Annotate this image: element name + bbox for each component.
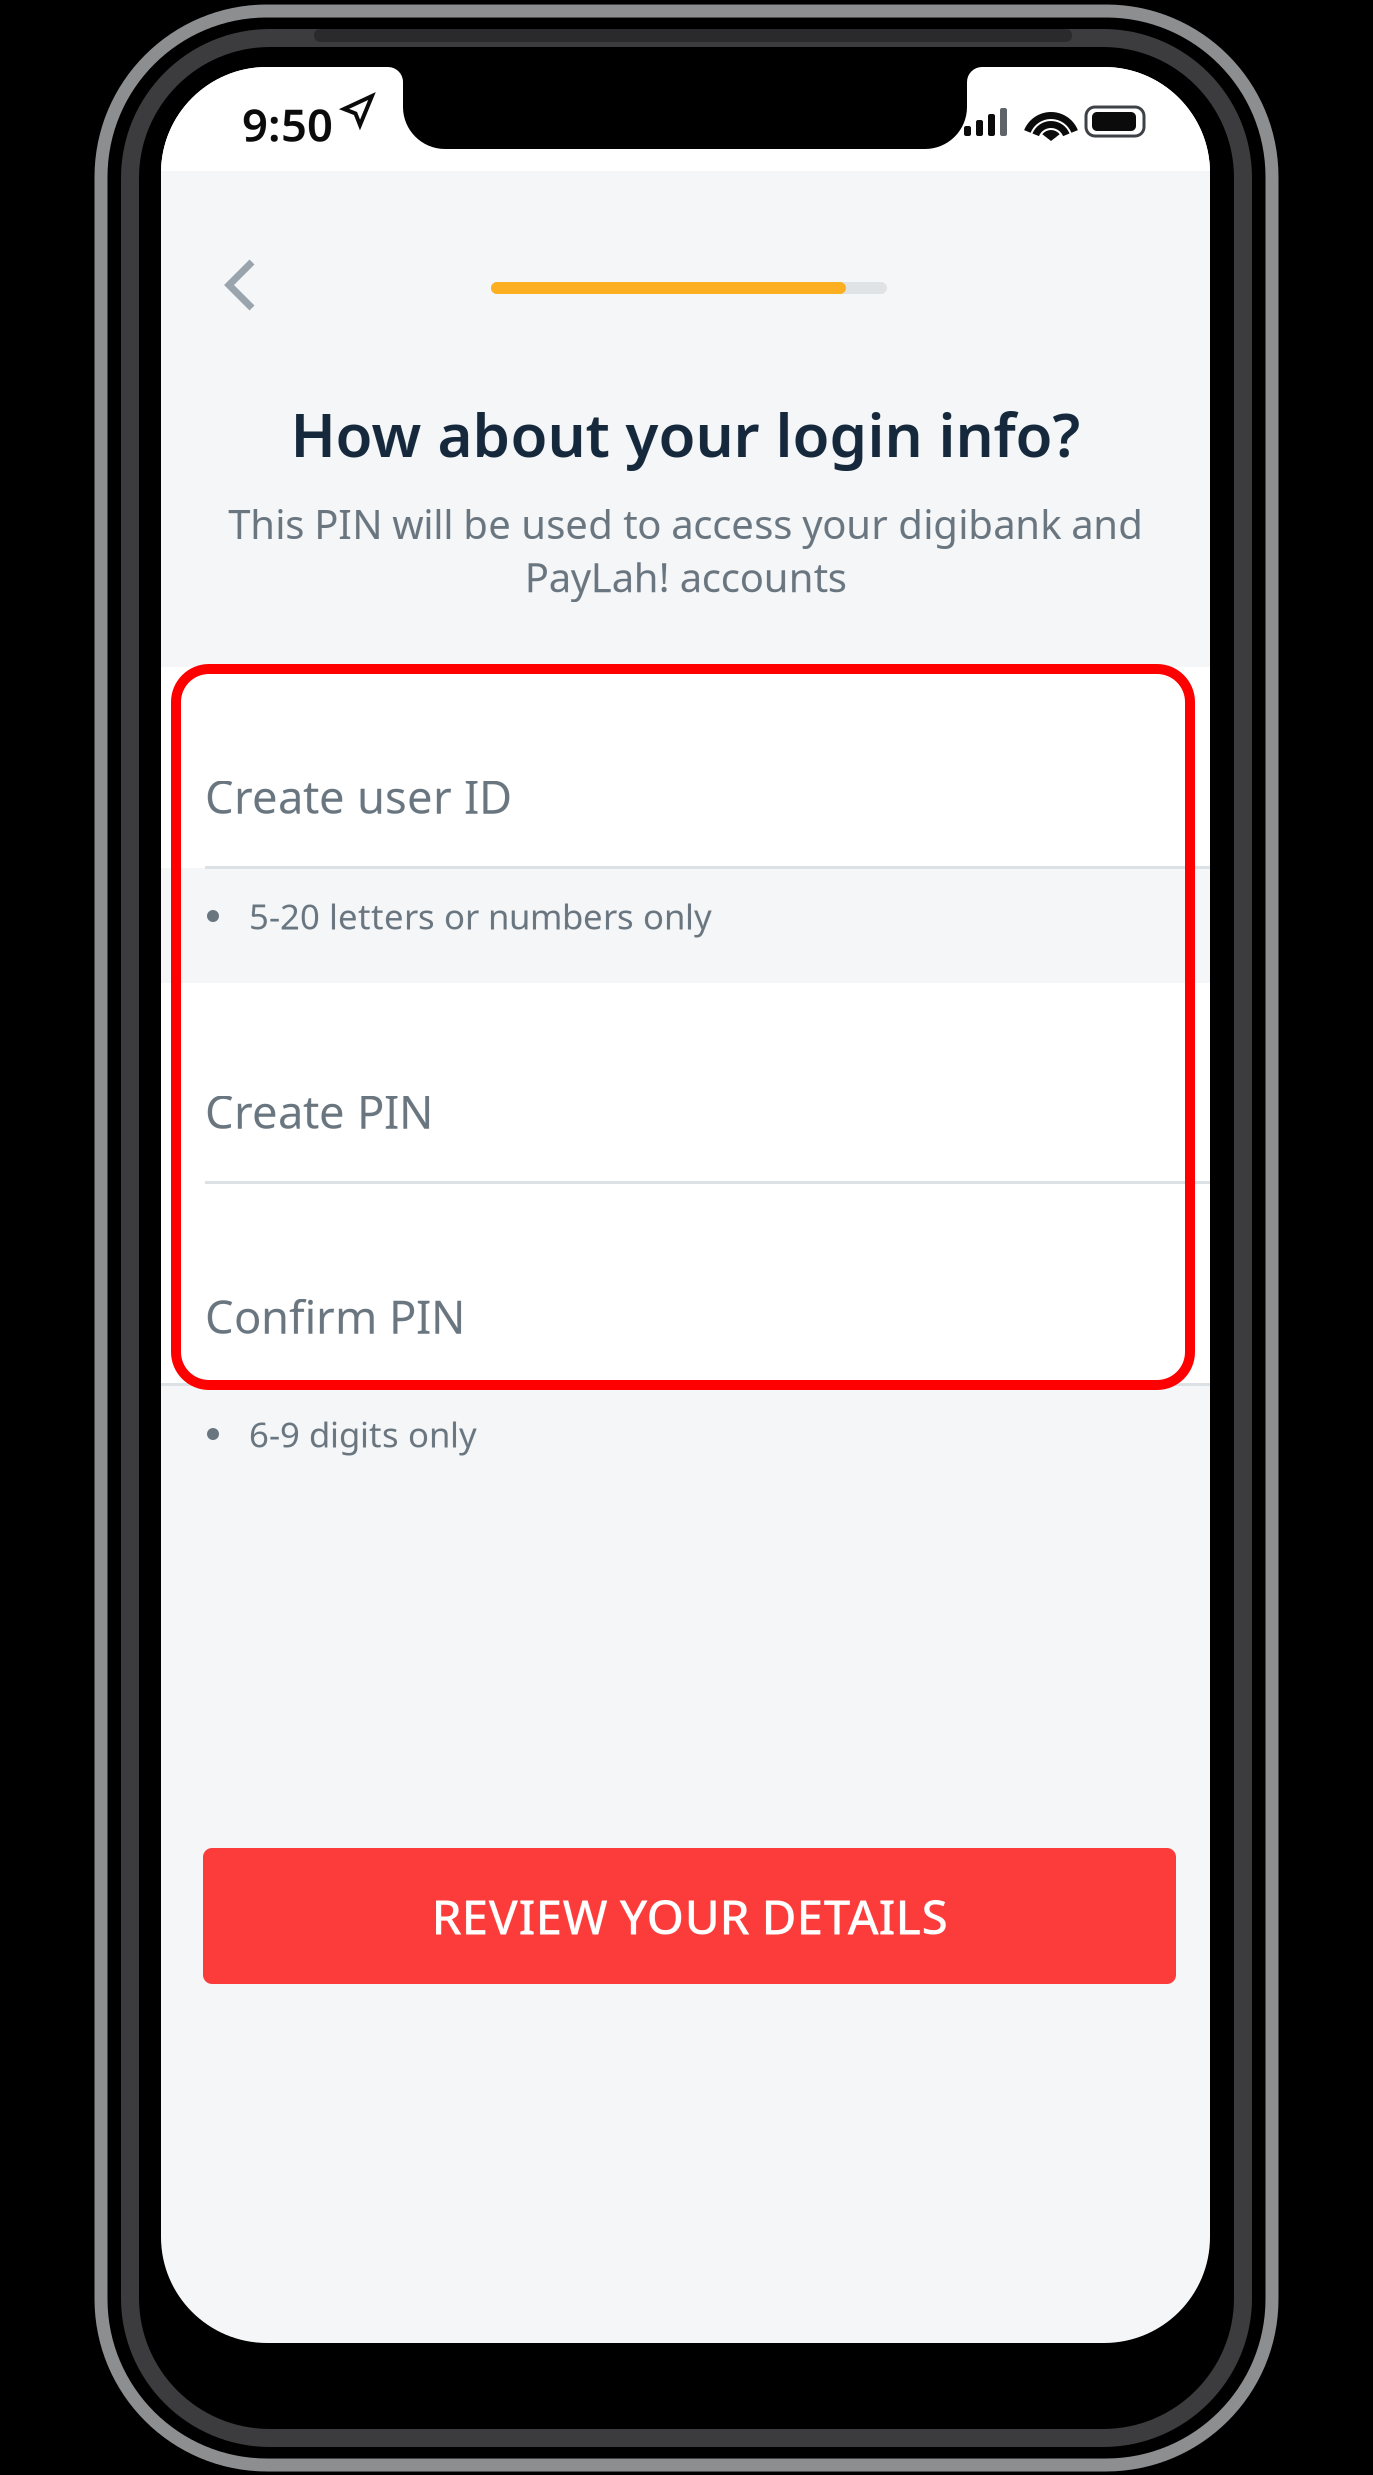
- staticText: Create PIN: [205, 1081, 433, 1141]
- staticText: How about your login info?: [290, 394, 1080, 474]
- staticText: This PIN will be used to access your dig…: [228, 497, 1143, 603]
- staticText: Create user ID: [205, 766, 512, 826]
- button[interactable]: Confirm PIN: [161, 1184, 1210, 1383]
- staticText: 9:50: [242, 94, 333, 154]
- button[interactable]: REVIEW YOUR DETAILS: [203, 1848, 1176, 1984]
- button[interactable]: Create user ID: [161, 667, 1210, 866]
- staticText: 5-20 letters or numbers only: [249, 893, 712, 939]
- staticText: REVIEW YOUR DETAILS: [431, 1884, 947, 1948]
- staticText: 6-9 digits only: [249, 1411, 477, 1457]
- button[interactable]: Create PIN: [161, 983, 1210, 1181]
- button[interactable]: Back: [198, 231, 283, 339]
- staticText: Confirm PIN: [205, 1286, 465, 1346]
